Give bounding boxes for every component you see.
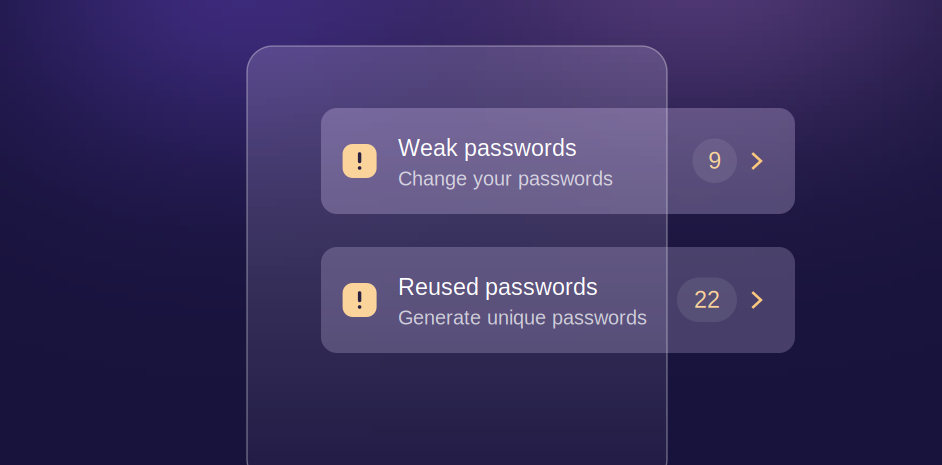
button[interactable]: Weak passwords — [321, 108, 795, 214]
staticText: Reused passwords — [398, 274, 598, 300]
staticText: Change your passwords — [398, 168, 613, 190]
staticText: Generate unique passwords — [398, 307, 647, 329]
staticText: Weak passwords — [398, 135, 577, 161]
staticText: 9 — [708, 148, 721, 174]
button[interactable]: Reused passwords — [321, 247, 795, 353]
staticText: 22 — [694, 287, 720, 313]
